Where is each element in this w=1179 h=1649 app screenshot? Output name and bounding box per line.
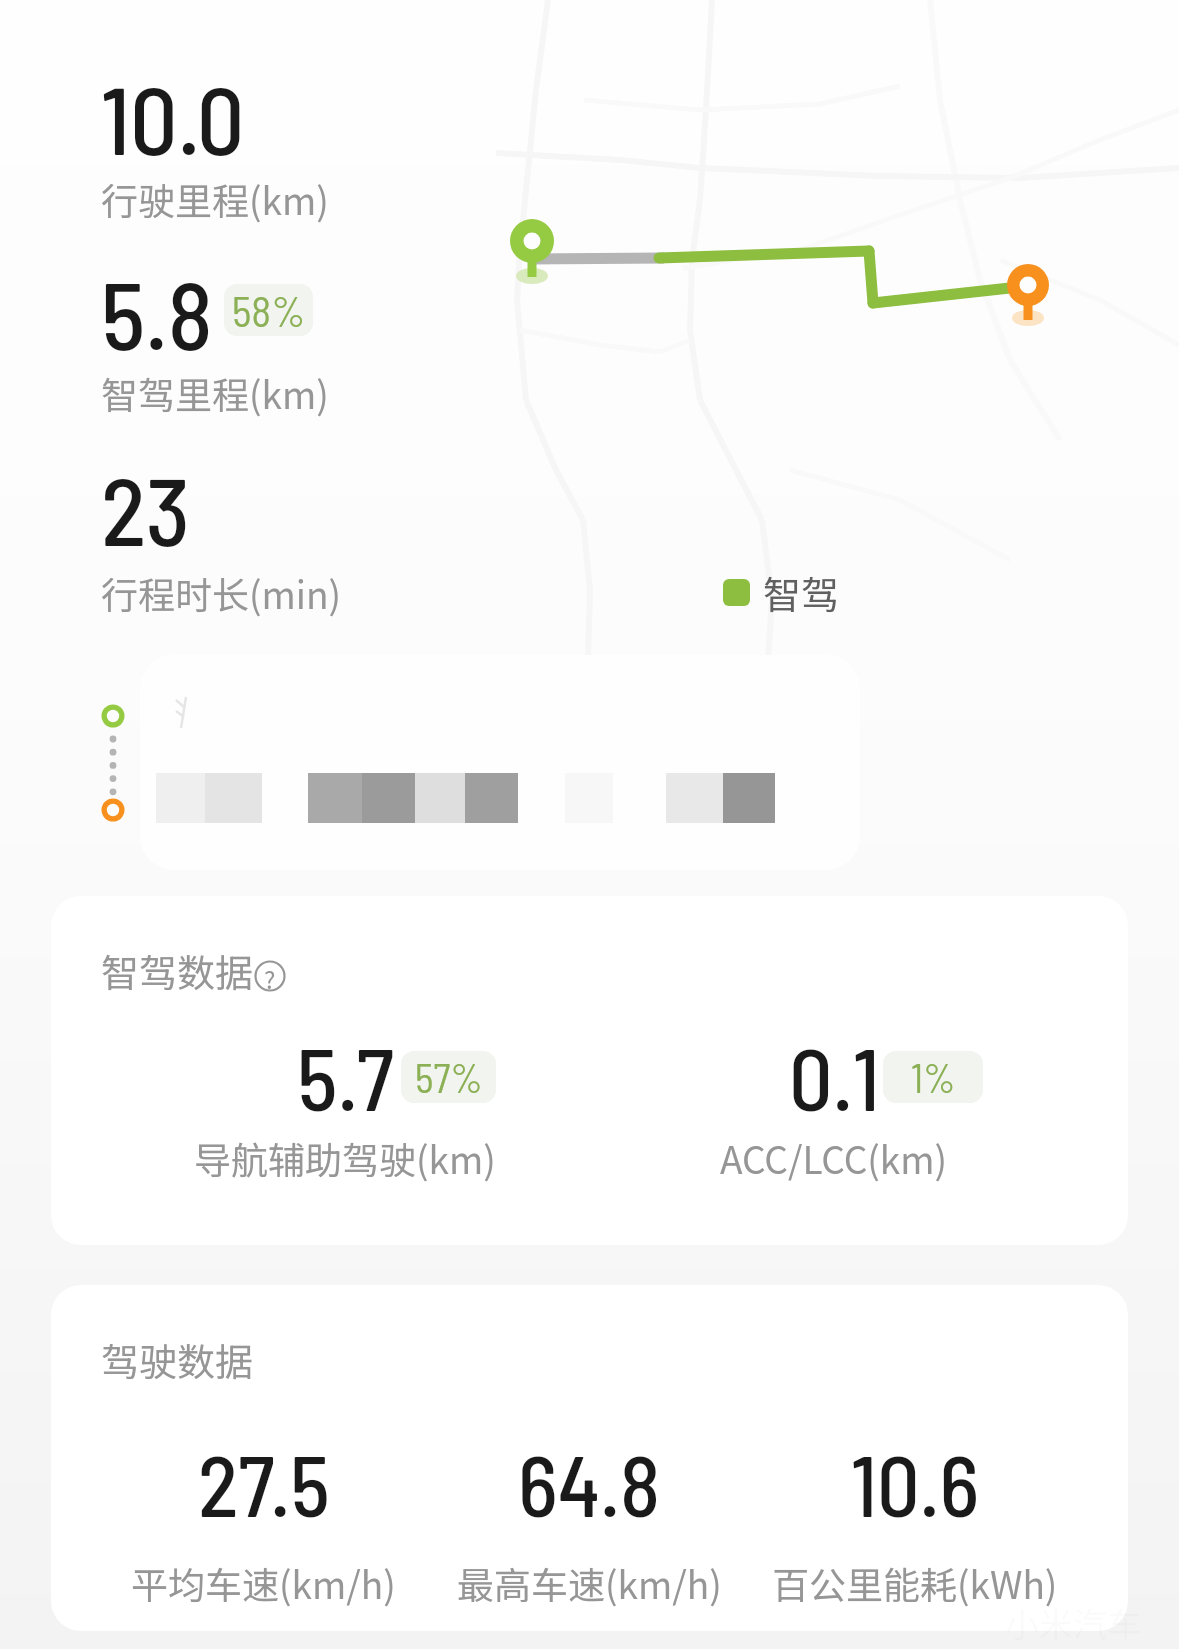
button[interactable]: 10.0 bbox=[101, 61, 351, 226]
staticText: ACC/LCC(km) bbox=[720, 1131, 947, 1185]
staticText: 64.8 bbox=[518, 1433, 661, 1534]
staticText: 57% bbox=[415, 1053, 483, 1101]
staticText: 行驶里程(km) bbox=[101, 172, 329, 226]
staticText: 导航辅助驾驶(km) bbox=[194, 1131, 496, 1185]
other: 智驾数据说明 bbox=[255, 956, 285, 986]
button[interactable]: 5.8 bbox=[101, 256, 351, 421]
staticText: 驾驶数据 bbox=[101, 1332, 254, 1387]
button[interactable]: 行程详情 bbox=[140, 655, 860, 870]
button[interactable]: 驾驶数据 bbox=[51, 1285, 1128, 1631]
button[interactable]: 23 bbox=[101, 452, 351, 617]
staticText: 27.5 bbox=[198, 1433, 330, 1534]
staticText: 平均车速(km/h) bbox=[131, 1556, 396, 1610]
staticText: 小米汽车 bbox=[1005, 1598, 1141, 1647]
button[interactable]: 智驾 bbox=[723, 565, 840, 620]
staticText: ? bbox=[264, 961, 276, 991]
staticText: 百公里能耗(kWh) bbox=[772, 1556, 1058, 1610]
staticText: 5.7 bbox=[297, 1025, 394, 1128]
staticText: 5.8 bbox=[101, 256, 213, 369]
staticText: 智驾 bbox=[763, 565, 840, 620]
staticText: 智驾数据 bbox=[101, 943, 254, 998]
staticText: 10.0 bbox=[101, 61, 245, 174]
staticText: 智驾里程(km) bbox=[101, 366, 329, 420]
staticText: 58% bbox=[232, 285, 306, 335]
staticText: 行程时长(min) bbox=[101, 566, 342, 620]
button[interactable]: 智驾数据 bbox=[51, 896, 1128, 1245]
staticText: 1% bbox=[911, 1053, 956, 1101]
staticText: 10.6 bbox=[851, 1433, 980, 1534]
staticText: 0.1 bbox=[789, 1025, 880, 1128]
button[interactable]: 智驾数据 bbox=[101, 943, 285, 998]
staticText: 最高车速(km/h) bbox=[457, 1556, 722, 1610]
staticText: 23 bbox=[101, 452, 191, 565]
